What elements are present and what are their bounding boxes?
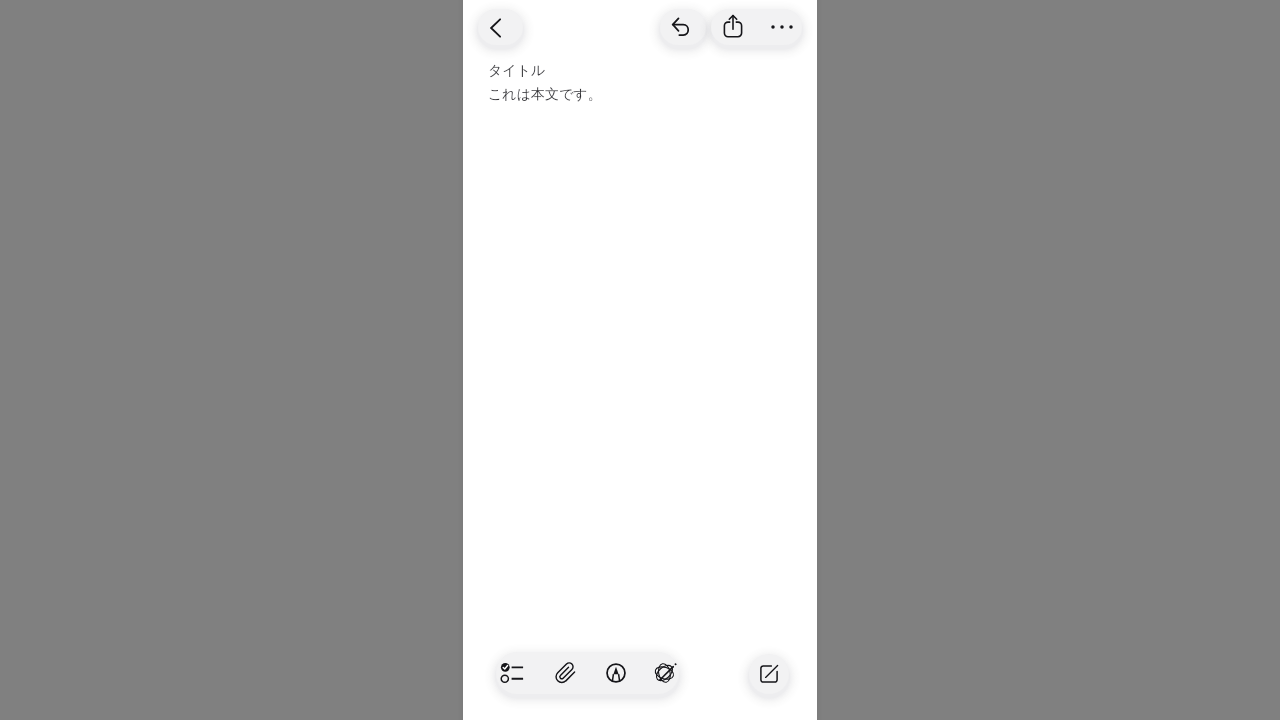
button[interactable]: New note (749, 654, 789, 694)
staticText: これは本文です。 (488, 86, 602, 104)
button[interactable]: Undo (660, 9, 706, 45)
button[interactable]: Share (711, 9, 757, 45)
button[interactable]: AI assist (644, 652, 679, 694)
button[interactable]: Attach file (543, 652, 587, 694)
button[interactable]: Back (478, 9, 523, 45)
button[interactable]: More options (757, 9, 802, 45)
button[interactable]: Draw (594, 652, 638, 694)
button[interactable]: Checklist (496, 652, 534, 694)
staticText: タイトル (488, 62, 546, 80)
